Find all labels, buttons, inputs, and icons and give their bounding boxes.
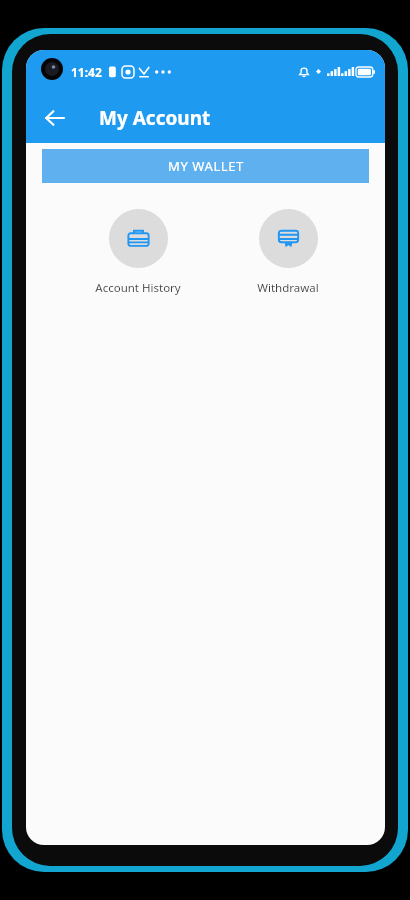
staticText: 11:42 bbox=[71, 64, 102, 80]
button[interactable]: Withdrawal bbox=[244, 209, 332, 296]
staticText: My Account bbox=[99, 105, 211, 131]
staticText: Withdrawal bbox=[257, 280, 319, 296]
button[interactable]: MY WALLET bbox=[42, 149, 369, 183]
staticText: Account History bbox=[95, 280, 181, 296]
staticText: MY WALLET bbox=[168, 157, 244, 175]
button[interactable]: Account History bbox=[94, 209, 182, 296]
button[interactable]: Back bbox=[38, 101, 72, 135]
